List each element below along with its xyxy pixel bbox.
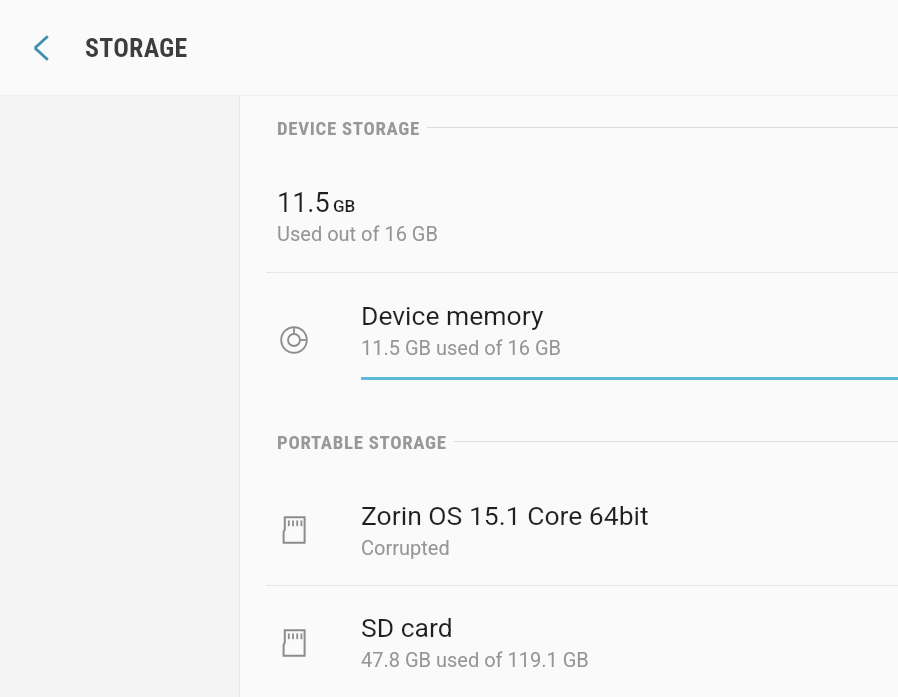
- staticText: DEVICE STORAGE: [277, 118, 420, 140]
- staticText: 47.8 GB used of 119.1 GB: [361, 648, 589, 671]
- staticText: STORAGE: [85, 33, 188, 63]
- staticText: Device memory: [361, 300, 544, 331]
- staticText: Corrupted: [361, 536, 450, 559]
- button[interactable]: Zorin OS 15.1 Core 64bit: [240, 473, 898, 585]
- button[interactable]: SD card: [240, 586, 898, 697]
- staticText: Used out of 16 GB: [277, 222, 438, 245]
- staticText: PORTABLE STORAGE: [277, 432, 447, 454]
- button[interactable]: Device memory: [240, 273, 898, 385]
- staticText: Zorin OS 15.1 Core 64bit: [361, 500, 649, 531]
- button[interactable]: Navigate up: [0, 13, 70, 83]
- staticText: 11.5 GB used of 16 GB: [361, 336, 562, 359]
- staticText: 11.5: [277, 187, 330, 219]
- staticText: SD card: [361, 612, 453, 643]
- staticText: GB: [333, 196, 356, 216]
